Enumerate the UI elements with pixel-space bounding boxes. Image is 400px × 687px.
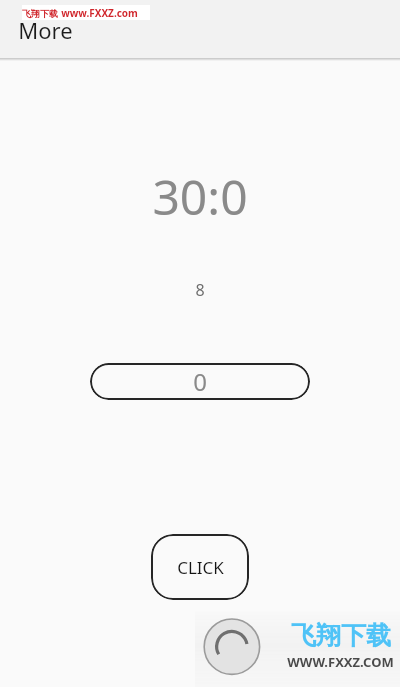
staticText: 飞翔下载 xyxy=(291,620,391,651)
staticText: 0 xyxy=(193,365,207,398)
staticText: 8 xyxy=(195,279,205,301)
button[interactable]: CLICK xyxy=(151,534,249,600)
staticText: 飞翔下载 xyxy=(22,8,58,19)
staticText: More xyxy=(18,15,73,45)
staticText: 30:0 xyxy=(152,164,248,229)
staticText: www.FXXZ.com xyxy=(61,6,138,20)
button[interactable]: 0 xyxy=(90,363,310,400)
staticText: CLICK xyxy=(177,556,224,579)
staticText: WWW.FXXZ.COM xyxy=(287,653,394,671)
